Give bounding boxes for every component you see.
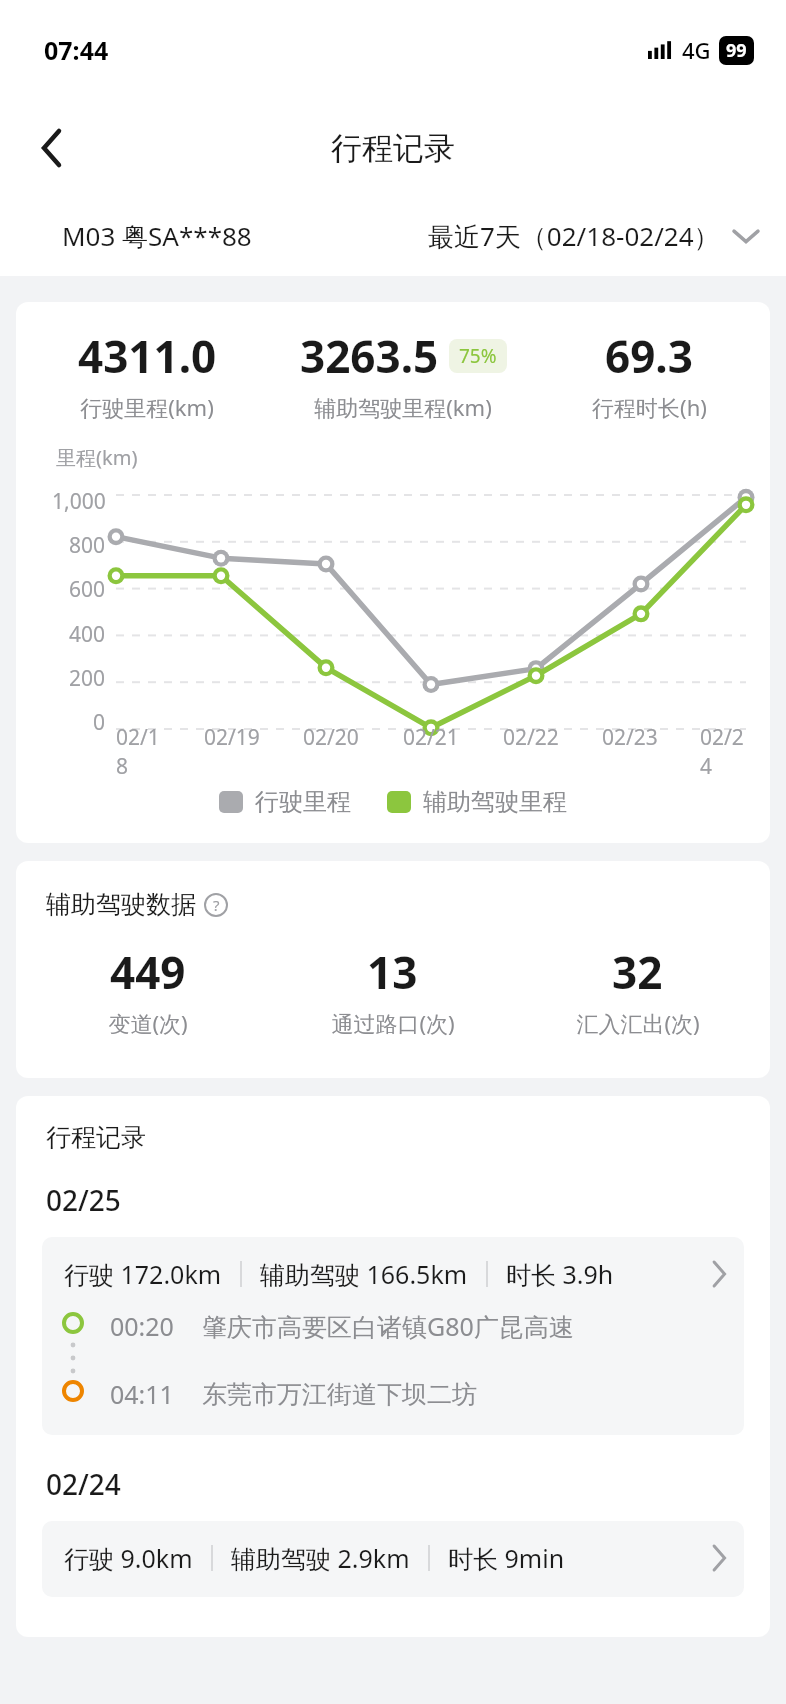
staticText: 辅助驾驶里程 (423, 787, 567, 817)
staticText: 最近7天（02/18-02/24） (428, 218, 720, 254)
staticText: 02/19 (204, 723, 260, 752)
other: Details (712, 1546, 726, 1570)
staticText: 400 (69, 620, 106, 649)
staticText: 肇庆市高要区白诸镇G80广昆高速 (202, 1309, 574, 1343)
staticText: 449 (110, 942, 186, 1002)
staticText: 13 (367, 942, 418, 1002)
staticText: 32 (612, 942, 663, 1002)
staticText: 行驶里程 (255, 787, 351, 817)
staticText: 02/22 (503, 723, 559, 752)
button[interactable]: 行驶里程 (219, 787, 351, 817)
staticText: 07:44 (44, 33, 109, 67)
button[interactable]: 行驶 172.0km (42, 1237, 744, 1435)
staticText: 行程记录 (331, 129, 455, 168)
staticText: ? (213, 895, 220, 915)
staticText: 02/23 (602, 723, 658, 752)
button[interactable]: Help (204, 893, 228, 917)
staticText: 02/18 (116, 723, 162, 781)
staticText: M03 粤SA***88 (62, 218, 252, 254)
staticText: 辅助驾驶 2.9km (231, 1541, 410, 1575)
staticText: 69.3 (605, 326, 693, 386)
button[interactable]: 最近7天（02/18-02/24） (428, 218, 758, 254)
button[interactable]: 辅助驾驶里程 (387, 787, 567, 817)
staticText: 行程记录 (46, 1122, 146, 1153)
staticText: 0 (93, 708, 106, 737)
button[interactable]: Back (24, 120, 80, 176)
staticText: 75% (459, 343, 497, 369)
staticText: 02/20 (303, 723, 359, 752)
staticText: 99 (726, 38, 747, 63)
staticText: 4311.0 (78, 326, 217, 386)
staticText: 3263.5 (300, 326, 439, 386)
staticText: 变道(次) (108, 1008, 188, 1038)
staticText: 东莞市万江街道下坝二坊 (202, 1379, 477, 1410)
staticText: 04:11 (110, 1377, 174, 1411)
other: Details (712, 1262, 726, 1286)
staticText: 00:20 (110, 1309, 174, 1343)
staticText: 4G (682, 35, 711, 65)
staticText: 行驶 9.0km (64, 1541, 193, 1575)
staticText: 时长 3.9h (506, 1257, 614, 1291)
staticText: 1,000 (52, 487, 106, 516)
staticText: 辅助驾驶数据 (46, 889, 196, 920)
staticText: 辅助驾驶 166.5km (260, 1257, 468, 1291)
staticText: 行程时长(h) (592, 392, 707, 422)
staticText: 行驶 172.0km (64, 1257, 222, 1291)
staticText: 02/24 (700, 723, 746, 781)
staticText: 800 (69, 531, 106, 560)
staticText: 600 (69, 575, 106, 604)
staticText: 汇入汇出(次) (576, 1008, 700, 1038)
button[interactable]: 行驶 9.0km (42, 1521, 744, 1597)
staticText: 200 (69, 664, 106, 693)
staticText: 里程(km) (56, 444, 138, 471)
staticText: 通过路口(次) (331, 1008, 455, 1038)
staticText: 辅助驾驶里程(km) (314, 392, 492, 422)
staticText: 02/25 (46, 1181, 121, 1219)
staticText: 时长 9min (448, 1541, 565, 1575)
staticText: 02/24 (46, 1465, 121, 1503)
staticText: 行驶里程(km) (80, 392, 214, 422)
staticText: 02/21 (403, 723, 459, 752)
